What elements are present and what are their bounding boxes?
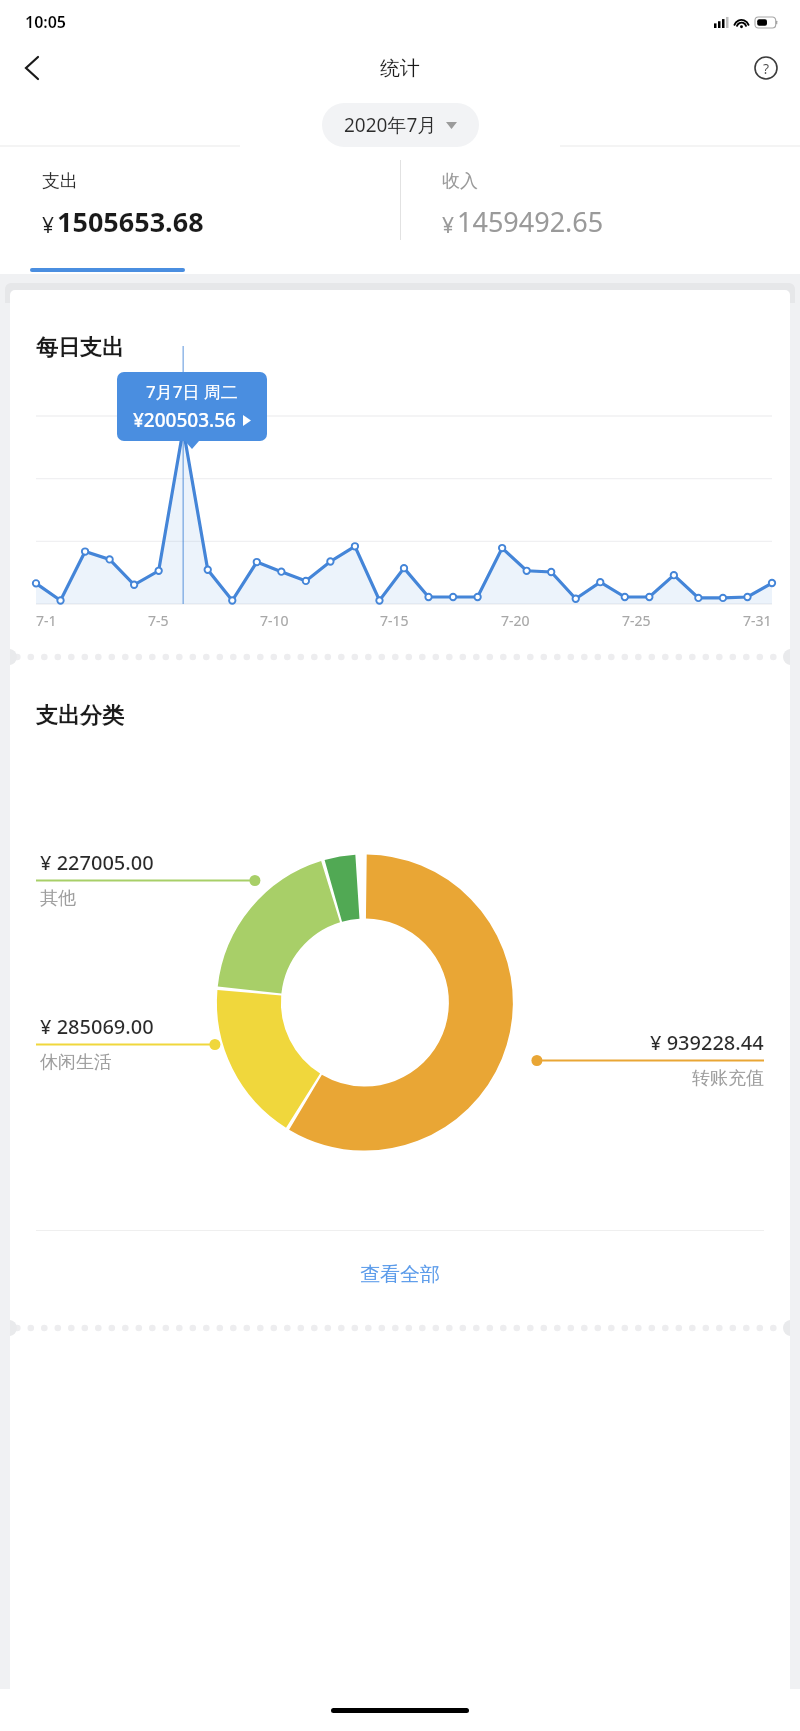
staticText: 支出	[42, 170, 78, 193]
staticText: 查看全部	[360, 1262, 440, 1287]
staticText: 统计	[380, 56, 420, 81]
button[interactable]: 支出	[0, 154, 400, 240]
staticText: 休闲生活	[40, 1051, 112, 1074]
button[interactable]: Back	[8, 44, 56, 92]
staticText: 7-20	[501, 611, 530, 630]
staticText: 1505653.68	[57, 203, 204, 240]
staticText: 10:05	[25, 11, 67, 33]
staticText: 收入	[442, 170, 478, 193]
staticText: 转账充值	[692, 1067, 764, 1090]
staticText: 7-5	[148, 611, 169, 630]
staticText: 其他	[40, 887, 76, 910]
button[interactable]: 收入	[400, 154, 800, 240]
button[interactable]: 7月7日 周二	[117, 372, 267, 441]
staticText: 支出分类	[36, 702, 124, 730]
staticText: 每日支出	[36, 334, 124, 362]
staticText: ¥ 227005.00	[40, 849, 154, 876]
staticText: ¥	[442, 211, 455, 240]
staticText: ¥ 285069.00	[40, 1013, 154, 1040]
staticText: ¥	[42, 211, 55, 240]
staticText: 7月7日 周二	[146, 380, 238, 403]
staticText: 7-15	[380, 611, 409, 630]
staticText: 7-31	[743, 611, 772, 630]
staticText: 2020年7月	[344, 112, 437, 138]
staticText: ?	[763, 59, 770, 78]
button[interactable]: 查看全部	[10, 1231, 790, 1317]
staticText: ¥ 939228.44	[650, 1029, 764, 1056]
staticText: 1459492.65	[457, 203, 604, 240]
staticText: ¥200503.56	[133, 407, 236, 433]
button[interactable]: 2020年7月	[322, 103, 479, 147]
staticText: 7-25	[622, 611, 651, 630]
button[interactable]: Help	[744, 46, 788, 90]
staticText: 7-1	[36, 611, 57, 630]
staticText: 7-10	[260, 611, 289, 630]
